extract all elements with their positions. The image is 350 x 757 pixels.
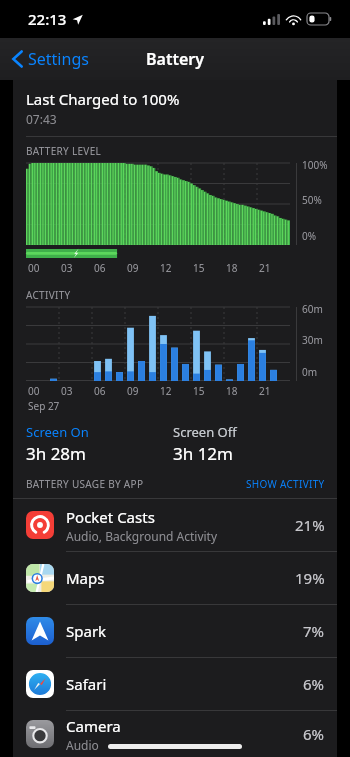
staticText: SHOW ACTIVITY — [246, 477, 325, 491]
staticText: Pocket Casts — [66, 507, 155, 527]
button[interactable]: Safari — [13, 658, 337, 710]
staticText: 18 — [226, 384, 238, 398]
staticText: 12 — [160, 384, 172, 398]
button[interactable]: SHOW ACTIVITY — [244, 475, 327, 493]
staticText: Screen On — [26, 423, 89, 441]
staticText: 6% — [303, 674, 325, 694]
button[interactable]: Spark — [13, 605, 337, 657]
button[interactable]: Camera — [13, 711, 337, 757]
staticText: Battery — [146, 48, 204, 70]
staticText: Audio — [66, 737, 99, 753]
staticText: 22:13 — [28, 9, 67, 29]
staticText: 6% — [303, 724, 325, 744]
staticText: 0m — [302, 365, 318, 376]
staticText: 03 — [61, 261, 73, 275]
staticText: 15 — [193, 261, 205, 275]
staticText: 100% — [302, 158, 328, 169]
staticText: 07:43 — [26, 111, 57, 127]
button[interactable]: Battery level chart — [26, 163, 290, 245]
staticText: 3h 28m — [26, 442, 86, 465]
staticText: Settings — [28, 48, 89, 70]
staticText: Sep 27 — [28, 399, 60, 413]
staticText: 30m — [302, 333, 323, 344]
staticText: 18 — [226, 261, 238, 275]
staticText: 7% — [303, 621, 325, 641]
staticText: 3h 12m — [173, 442, 233, 465]
button[interactable]: Pocket Casts — [13, 499, 337, 551]
staticText: 12 — [160, 261, 172, 275]
staticText: 06 — [94, 384, 106, 398]
staticText: Safari — [66, 674, 107, 694]
button[interactable]: Settings — [8, 44, 93, 74]
staticText: 21% — [295, 515, 325, 535]
staticText: Maps — [66, 568, 105, 588]
button[interactable]: Activity chart — [26, 307, 290, 381]
staticText: BATTERY LEVEL — [26, 144, 102, 158]
staticText: 60m — [302, 302, 323, 313]
staticText: 15 — [193, 384, 205, 398]
staticText: 0% — [302, 229, 317, 240]
staticText: 09 — [127, 261, 139, 275]
staticText: Spark — [66, 621, 107, 641]
button[interactable]: Maps — [13, 552, 337, 604]
staticText: 06 — [94, 261, 106, 275]
staticText: Last Charged to 100% — [26, 89, 180, 109]
staticText: 09 — [127, 384, 139, 398]
staticText: 19% — [295, 568, 325, 588]
staticText: Audio, Background Activity — [66, 528, 218, 544]
staticText: 03 — [61, 384, 73, 398]
staticText: 21 — [259, 261, 271, 275]
staticText: 21 — [259, 384, 271, 398]
staticText: BATTERY USAGE BY APP — [26, 477, 144, 491]
staticText: 50% — [302, 193, 322, 204]
staticText: 00 — [28, 261, 40, 275]
staticText: Screen Off — [173, 423, 237, 441]
staticText: ACTIVITY — [26, 288, 71, 302]
staticText: 00 — [28, 384, 40, 398]
staticText: Camera — [66, 716, 121, 736]
